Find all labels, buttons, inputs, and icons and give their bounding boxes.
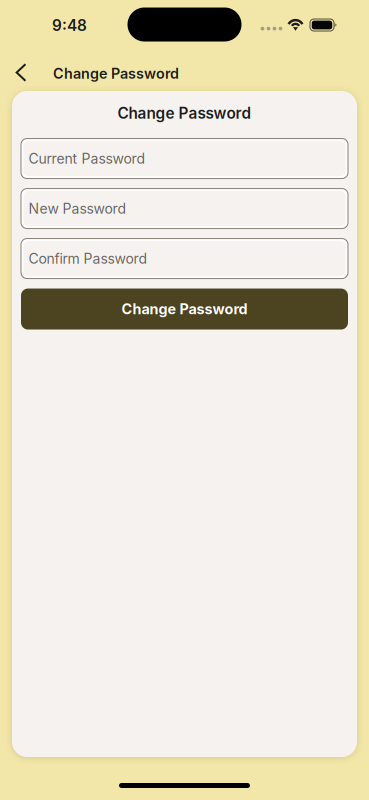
staticText: 9:48 — [52, 16, 87, 35]
staticText: New Password — [28, 200, 126, 217]
staticText: Current Password — [28, 150, 145, 167]
button[interactable]: Change Password — [21, 289, 348, 330]
staticText: Change Password — [121, 300, 247, 318]
staticText: Change Password — [117, 104, 251, 123]
staticText: Confirm Password — [28, 250, 147, 267]
staticText: Change Password — [53, 65, 179, 82]
button[interactable]: Back — [7, 55, 35, 89]
